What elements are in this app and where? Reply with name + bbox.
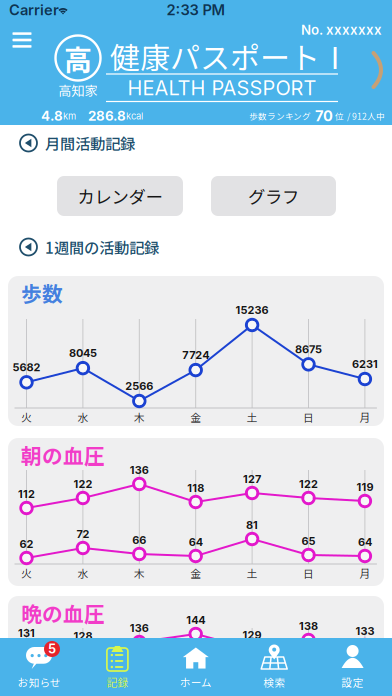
staticText: 129: [243, 628, 262, 642]
staticText: 8045: [69, 346, 97, 360]
staticText: 65: [301, 534, 315, 548]
staticText: お知らせ: [17, 674, 60, 690]
staticText: HEALTH PASSPORT: [127, 76, 316, 100]
staticText: グラフ: [248, 183, 299, 209]
staticText: 土: [247, 565, 258, 581]
staticText: 土: [247, 409, 258, 425]
staticText: 木: [134, 409, 145, 425]
staticText: 月間活動記録: [45, 132, 135, 154]
staticText: km: [63, 110, 76, 122]
staticText: 72: [20, 685, 33, 696]
staticText: 日: [303, 565, 314, 581]
staticText: 127: [243, 472, 261, 486]
staticText: 火: [21, 565, 32, 581]
staticText: 7724: [182, 348, 209, 362]
staticText: 2566: [125, 379, 153, 393]
staticText: ホーム: [180, 674, 212, 690]
button[interactable]: 検索: [235, 638, 314, 696]
button[interactable]: 設定: [314, 638, 392, 696]
staticText: 70: [315, 107, 333, 125]
staticText: 286.8: [88, 108, 126, 124]
staticText: 水: [77, 565, 88, 581]
staticText: 木: [134, 565, 145, 581]
staticText: 歩数ランキング: [249, 110, 311, 122]
staticText: 金: [190, 565, 201, 581]
staticText: 72: [76, 527, 89, 541]
staticText: 火: [21, 409, 32, 425]
staticText: 6231: [352, 357, 378, 371]
staticText: 高知家: [58, 80, 97, 100]
staticText: 81: [246, 518, 258, 532]
staticText: 122: [73, 477, 92, 491]
button[interactable]: Menu: [2, 20, 42, 60]
staticText: 月: [359, 409, 370, 425]
staticText: 136: [130, 463, 149, 477]
staticText: 128: [73, 629, 92, 643]
staticText: 4.8: [41, 108, 63, 124]
staticText: カレンダー: [77, 183, 162, 209]
button[interactable]: カレンダー: [57, 176, 183, 216]
staticText: / 912人中: [347, 110, 385, 122]
staticText: 71: [359, 686, 370, 696]
staticText: 64: [189, 535, 203, 549]
staticText: 15236: [236, 303, 269, 317]
staticText: 131: [18, 626, 35, 640]
staticText: 144: [186, 613, 205, 627]
staticText: 122: [299, 477, 318, 491]
staticText: 5: [48, 641, 56, 657]
staticText: 112: [18, 487, 35, 501]
staticText: 8675: [295, 343, 322, 356]
staticText: 健康パスポートⅠ: [110, 34, 350, 78]
staticText: 133: [355, 624, 374, 638]
staticText: kcal: [126, 110, 143, 122]
staticText: 月: [359, 565, 370, 581]
staticText: 位: [335, 110, 344, 122]
staticText: 66: [132, 533, 146, 547]
staticText: 日: [303, 409, 314, 425]
button[interactable]: 記録: [78, 638, 157, 696]
staticText: 119: [356, 480, 373, 494]
staticText: 歩数: [21, 278, 63, 308]
staticText: 64: [358, 535, 372, 549]
staticText: 1週間の活動記録: [45, 236, 159, 258]
staticText: No. xxxxxxx: [301, 22, 382, 38]
button[interactable]: 5: [0, 638, 78, 696]
staticText: Carrier: [9, 1, 59, 19]
staticText: 晩の血圧: [21, 598, 105, 628]
button[interactable]: ホーム: [157, 638, 235, 696]
staticText: 62: [19, 537, 33, 551]
staticText: 設定: [342, 674, 364, 690]
staticText: 2:33 PM: [166, 1, 225, 19]
staticText: 118: [187, 481, 204, 495]
button[interactable]: グラフ: [211, 176, 336, 216]
staticText: 138: [299, 619, 318, 633]
staticText: 136: [130, 621, 149, 635]
staticText: 80: [189, 677, 203, 691]
staticText: 5682: [12, 361, 40, 374]
staticText: 金: [190, 409, 201, 425]
staticText: 水: [77, 409, 88, 425]
staticText: 記録: [106, 674, 128, 690]
staticText: 検索: [263, 674, 285, 690]
button[interactable]: 1週間の活動記録: [20, 235, 372, 259]
staticText: 高: [64, 38, 92, 78]
staticText: 朝の血圧: [21, 440, 105, 470]
button[interactable]: 月間活動記録: [20, 131, 372, 155]
